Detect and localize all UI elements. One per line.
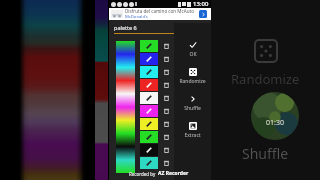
button[interactable]: Edit colour xyxy=(140,92,158,104)
staticText: Extract xyxy=(184,132,201,139)
button[interactable]: Delete colour xyxy=(161,118,171,130)
button[interactable]: Edit colour xyxy=(140,105,158,117)
staticText: palette 6 xyxy=(114,24,137,31)
button[interactable]: Edit colour xyxy=(140,144,158,156)
button[interactable]: Delete colour xyxy=(161,66,171,78)
staticText: 13:00 xyxy=(193,0,209,8)
button[interactable]: Delete colour xyxy=(161,53,171,65)
staticText: Shuffle xyxy=(242,144,289,163)
staticText: Randomize xyxy=(179,78,206,85)
button[interactable]: Delete colour xyxy=(161,131,171,143)
staticText: Randomize xyxy=(231,70,300,88)
button[interactable]: Delete colour xyxy=(161,40,171,52)
button[interactable]: Edit colour xyxy=(140,131,158,143)
button[interactable]: Extract xyxy=(174,122,211,139)
staticText: Disfruta del camino con McAuto xyxy=(125,8,194,14)
button[interactable]: Edit colour xyxy=(140,79,158,91)
button[interactable]: Delete colour xyxy=(161,157,171,169)
staticText: OK xyxy=(189,51,197,58)
staticText: 01:30 xyxy=(266,118,284,128)
staticText: McDonald's xyxy=(125,14,148,20)
button[interactable]: Randomize xyxy=(253,38,279,64)
button[interactable]: Edit colour xyxy=(140,40,158,52)
button[interactable]: Shuffle xyxy=(174,95,211,112)
button[interactable]: Delete colour xyxy=(161,105,171,117)
button[interactable]: Shuffle xyxy=(254,114,278,138)
staticText: Shuffle xyxy=(184,105,201,112)
staticText: Recorded by xyxy=(129,171,156,177)
button[interactable]: Randomize xyxy=(174,68,211,85)
button[interactable]: Edit colour xyxy=(140,53,158,65)
button[interactable]: Edit colour xyxy=(140,66,158,78)
button[interactable]: Edit colour xyxy=(140,118,158,130)
button[interactable]: Edit colour xyxy=(140,157,158,169)
button[interactable]: OK xyxy=(174,41,211,58)
button[interactable]: Delete colour xyxy=(161,92,171,104)
button[interactable]: Delete colour xyxy=(161,79,171,91)
staticText: AZ Recorder xyxy=(158,170,189,177)
button[interactable]: Disfruta del camino con McAuto xyxy=(109,8,211,20)
button[interactable]: Delete colour xyxy=(161,144,171,156)
